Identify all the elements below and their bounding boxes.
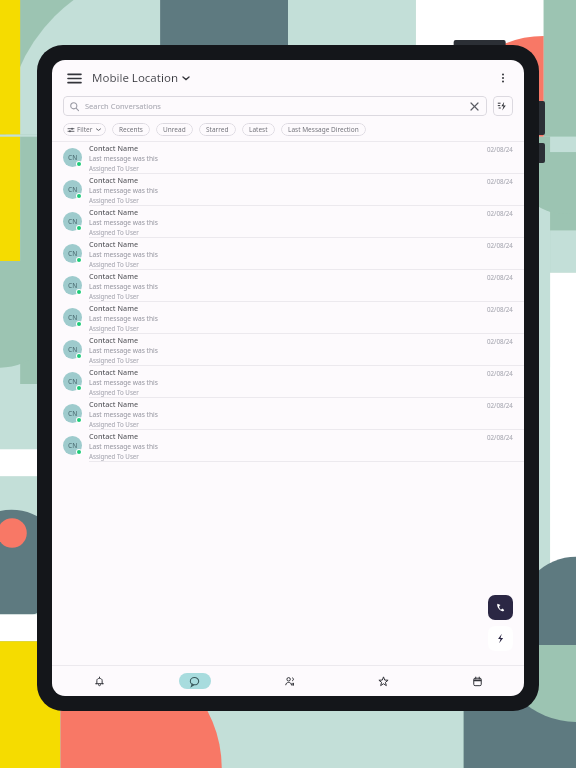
button[interactable]: Starred [199,123,236,136]
button[interactable]: Filter [63,123,106,136]
staticText: Contact Name [89,367,139,377]
button[interactable]: CN [52,366,524,398]
staticText: CN [68,313,78,322]
staticText: 02/08/24 [487,209,513,217]
staticText: Contact Name [89,399,139,409]
staticText: CN [68,217,78,226]
staticText: Assigned To User [89,356,139,364]
staticText: CN [68,281,78,290]
staticText: Assigned To User [89,452,139,460]
staticText: CN [68,345,78,354]
staticText: Last message was this [89,186,158,195]
button[interactable]: Mobile Location [92,70,190,86]
staticText: Assigned To User [89,228,139,236]
staticText: CN [68,249,78,258]
staticText: Last message was this [89,250,158,259]
button[interactable]: Starred [336,666,430,696]
staticText: Assigned To User [89,196,139,204]
button[interactable]: CN [52,430,524,462]
button[interactable]: AI assist [493,96,513,116]
staticText: Last message was this [89,154,158,163]
button[interactable]: Clear [469,101,480,112]
staticText: Last message was this [89,346,158,355]
staticText: Contact Name [89,335,139,345]
button[interactable]: Call [488,595,513,620]
button[interactable]: More options [493,68,513,88]
staticText: Last message was this [89,282,158,291]
staticText: Search Conversations [85,101,161,111]
staticText: Last message was this [89,442,158,451]
staticText: Contact Name [89,271,139,281]
staticText: 02/08/24 [487,273,513,281]
staticText: Last message was this [89,378,158,387]
staticText: Contact Name [89,143,139,153]
button[interactable]: CN [52,398,524,430]
button[interactable]: CN [52,174,524,206]
button[interactable]: CN [52,206,524,238]
staticText: 02/08/24 [487,369,513,377]
button[interactable]: Calendar [430,666,524,696]
staticText: Unread [163,125,186,134]
staticText: Filter [77,125,93,134]
staticText: 02/08/24 [487,145,513,153]
button[interactable]: Quick actions [488,626,513,651]
button[interactable]: Notifications [52,666,147,696]
staticText: 02/08/24 [487,305,513,313]
staticText: Last Message Direction [288,125,359,134]
staticText: Assigned To User [89,388,139,396]
button[interactable]: Recents [112,123,150,136]
button[interactable]: Latest [242,123,275,136]
staticText: Last message was this [89,314,158,323]
staticText: 02/08/24 [487,401,513,409]
staticText: Assigned To User [89,292,139,300]
staticText: 02/08/24 [487,337,513,345]
staticText: CN [68,153,78,162]
button[interactable]: CN [52,270,524,302]
staticText: Recents [119,125,143,134]
staticText: Contact Name [89,207,139,217]
button[interactable]: Unread [156,123,193,136]
staticText: CN [68,441,78,450]
staticText: Assigned To User [89,260,139,268]
button[interactable]: CN [52,302,524,334]
staticText: Assigned To User [89,324,139,332]
staticText: Contact Name [89,175,139,185]
button[interactable]: Conversations [147,666,242,696]
staticText: Contact Name [89,303,139,313]
staticText: Latest [249,125,268,134]
button[interactable]: CN [52,334,524,366]
staticText: Assigned To User [89,164,139,172]
button[interactable]: Menu [63,67,85,89]
staticText: CN [68,377,78,386]
button[interactable]: CN [52,142,524,174]
staticText: Starred [206,125,229,134]
staticText: Assigned To User [89,420,139,428]
staticText: Last message was this [89,410,158,419]
staticText: Last message was this [89,218,158,227]
staticText: 02/08/24 [487,241,513,249]
staticText: CN [68,185,78,194]
staticText: Contact Name [89,431,139,441]
button[interactable]: Contacts [242,666,336,696]
button[interactable]: CN [52,238,524,270]
staticText: Mobile Location [92,70,179,86]
button[interactable]: Last Message Direction [281,123,366,136]
staticText: 02/08/24 [487,177,513,185]
button[interactable]: Search Conversations [63,96,487,116]
staticText: Contact Name [89,239,139,249]
staticText: 02/08/24 [487,433,513,441]
staticText: CN [68,409,78,418]
